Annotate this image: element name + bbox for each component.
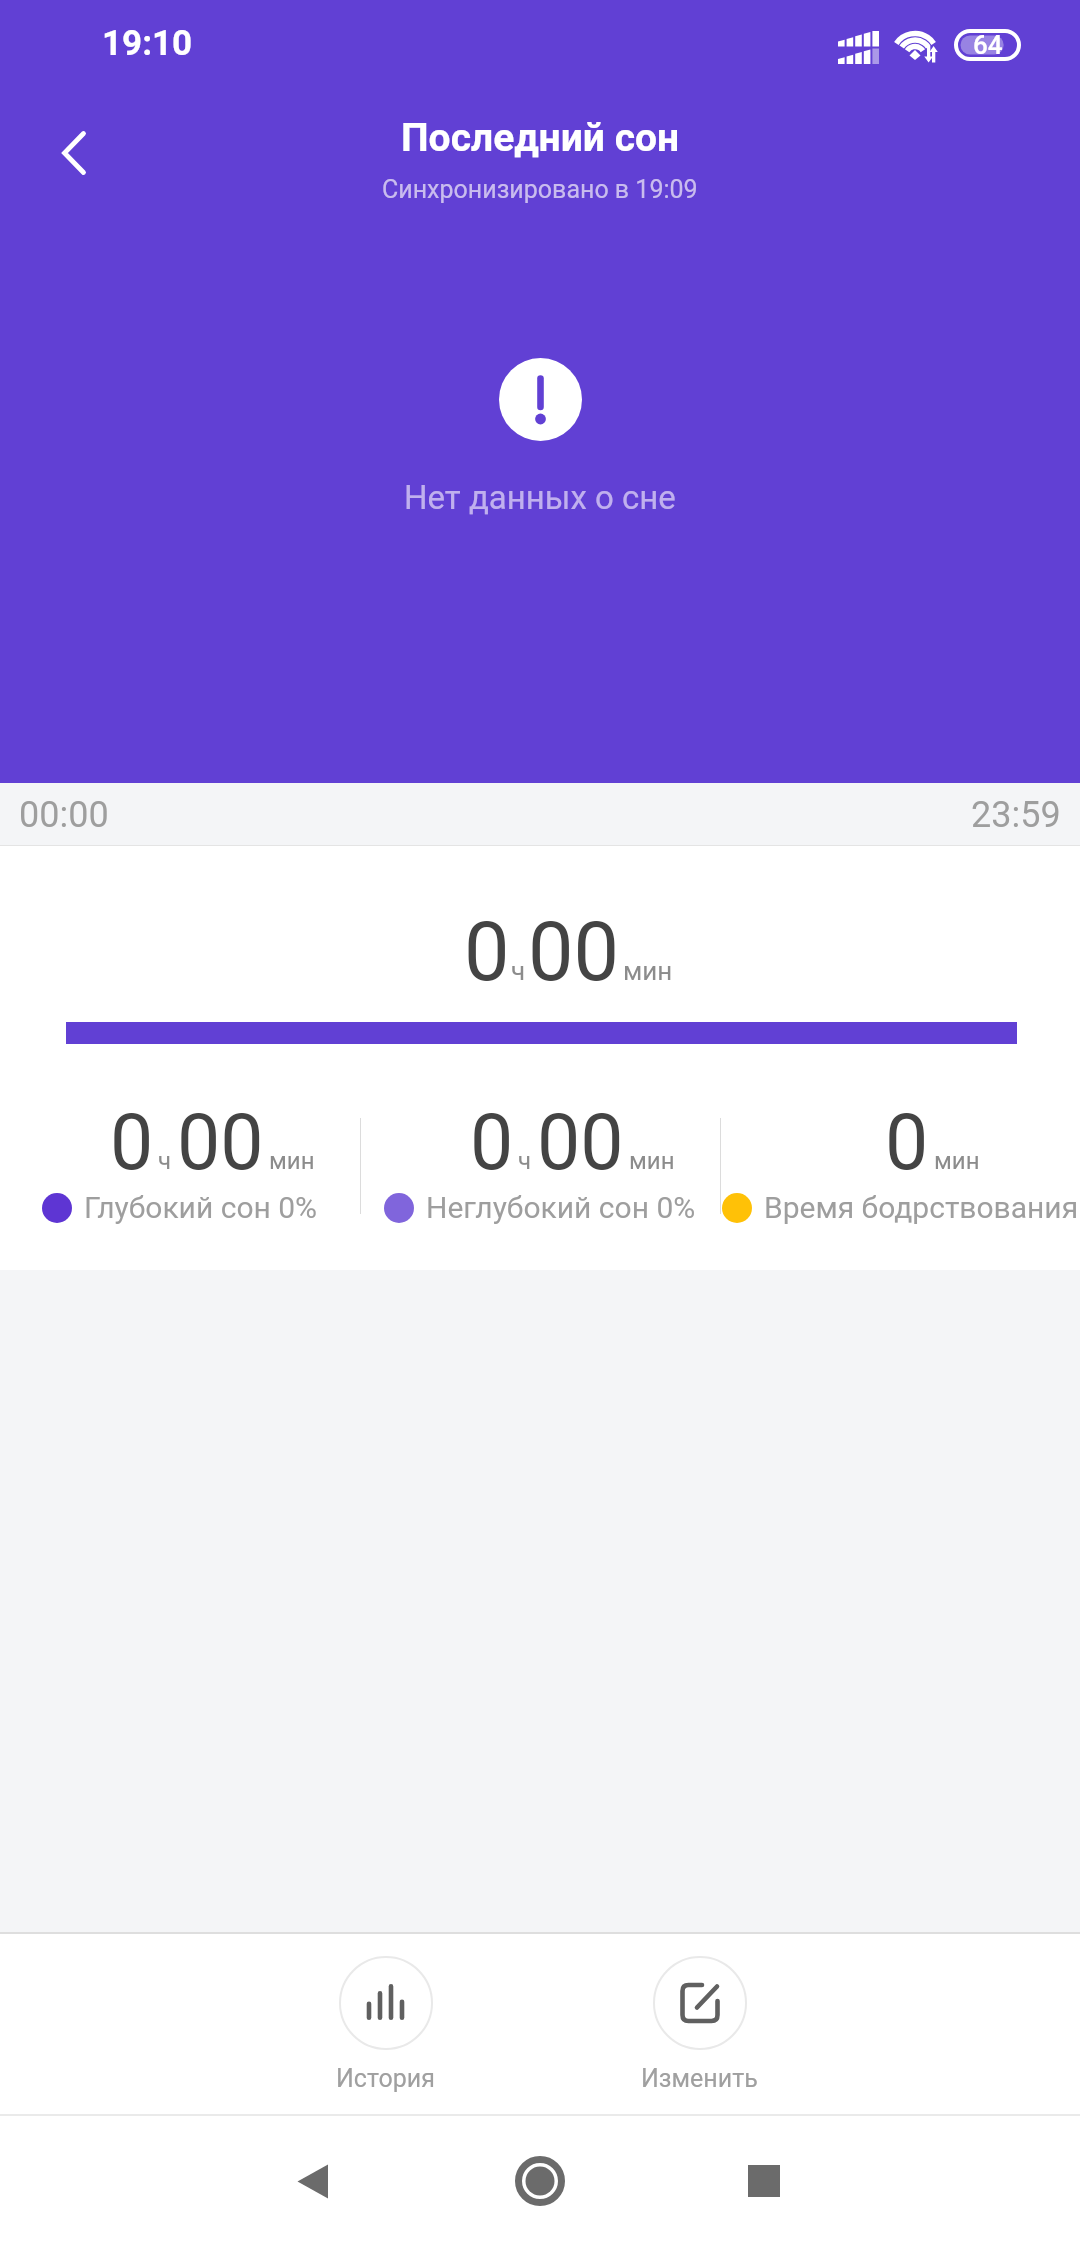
staticText: ч [518,1147,532,1175]
staticText: ч [511,956,526,986]
staticText: Неглубокий сон 0% [426,1190,696,1225]
staticText: 00 [528,905,620,1000]
button[interactable]: 0 [720,1078,1080,1228]
staticText: 00 [537,1098,624,1188]
staticText: 00:00 [19,794,109,836]
button[interactable]: Back [272,2141,352,2221]
button[interactable]: Изменить [641,1956,758,2093]
staticText: Изменить [641,2064,758,2093]
staticText: 23:59 [971,794,1061,836]
button[interactable]: 0 [360,1078,720,1228]
staticText: мин [269,1147,315,1175]
button[interactable]: Recents [724,2141,804,2221]
staticText: 0 [464,905,510,1000]
staticText: Нет данных о сне [404,478,676,517]
staticText: мин [623,956,673,986]
staticText: 00 [177,1098,264,1188]
button[interactable]: Back [26,105,122,201]
staticText: История [336,2064,435,2093]
staticText: 0 [470,1098,514,1188]
staticText: 0 [885,1098,929,1188]
staticText: Последний сон [401,115,680,161]
staticText: ч [158,1147,172,1175]
staticText: Глубокий сон 0% [84,1190,318,1225]
button[interactable]: 0 [0,1078,360,1228]
staticText: Синхронизировано в 19:09 [382,175,698,204]
staticText: Время бодрствования [764,1190,1079,1225]
staticText: мин [629,1147,675,1175]
staticText: мин [934,1147,980,1175]
button[interactable]: Home [500,2141,580,2221]
staticText: 64 [973,30,1003,60]
staticText: 0 [110,1098,154,1188]
button[interactable]: История [336,1956,435,2093]
staticText: 19:10 [102,23,193,64]
